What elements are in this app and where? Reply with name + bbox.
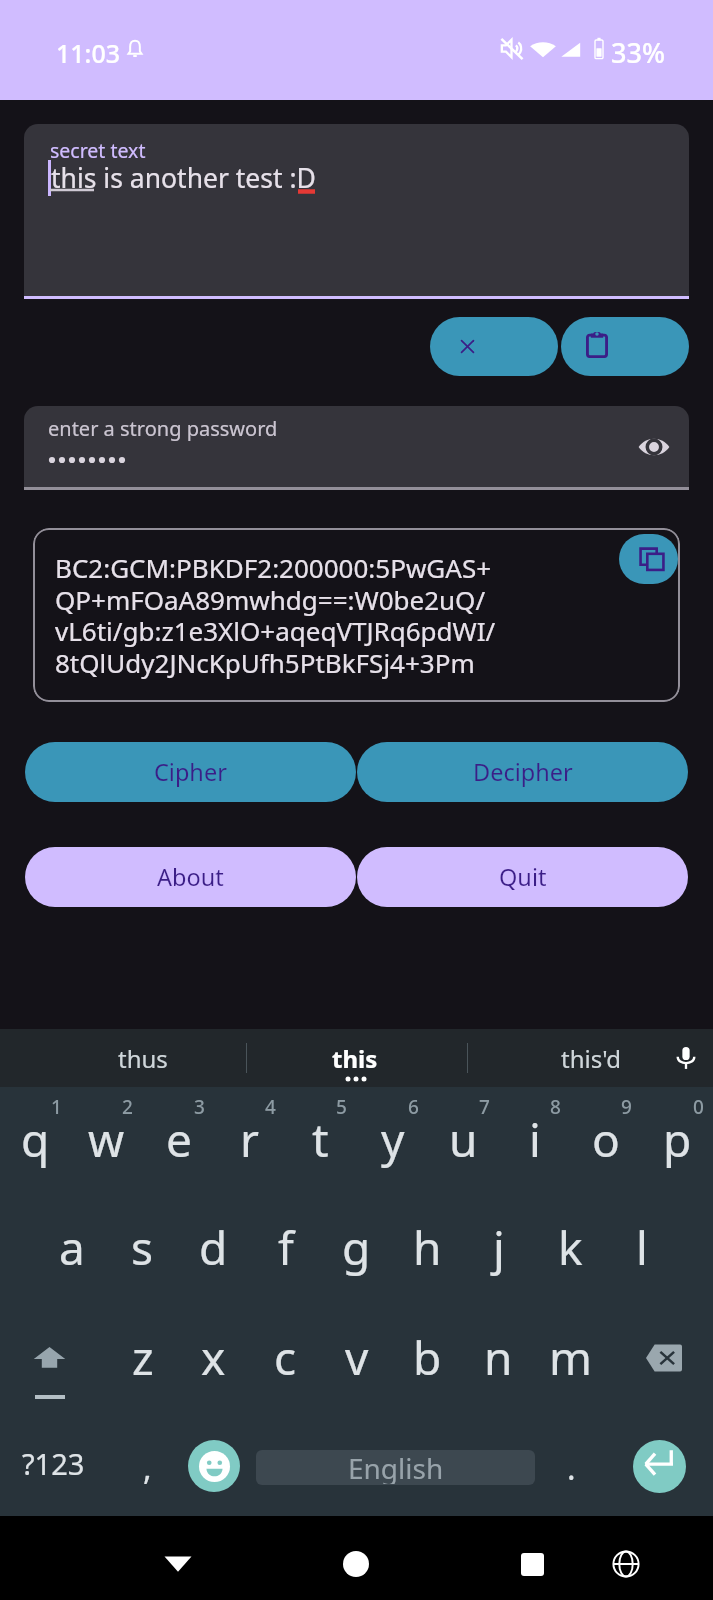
button[interactable]: . <box>541 1417 601 1517</box>
button[interactable]: k <box>535 1197 606 1297</box>
staticText: i <box>529 1108 541 1171</box>
staticText: ?123 <box>22 1444 85 1483</box>
button[interactable]: p <box>642 1089 713 1189</box>
button[interactable]: English <box>256 1450 535 1485</box>
staticText: 4 <box>265 1094 276 1120</box>
staticText: 0 <box>693 1094 704 1120</box>
staticText: Cipher <box>154 756 227 788</box>
button[interactable]: w <box>71 1089 142 1189</box>
button[interactable]: g <box>321 1197 392 1297</box>
staticText: k <box>558 1216 583 1279</box>
button[interactable]: f <box>250 1197 321 1297</box>
button[interactable]: r <box>214 1089 285 1189</box>
staticText: 7 <box>479 1094 490 1120</box>
button[interactable]: Recents <box>521 1553 544 1576</box>
staticText: . <box>567 1446 576 1490</box>
staticText: thus <box>118 1042 168 1075</box>
button[interactable]: q <box>0 1089 71 1189</box>
staticText: p <box>663 1108 692 1171</box>
button[interactable]: n <box>463 1307 534 1407</box>
button[interactable]: s <box>107 1197 178 1297</box>
staticText: Quit <box>499 861 547 893</box>
staticText: c <box>274 1326 297 1389</box>
button[interactable]: j <box>463 1197 534 1297</box>
button[interactable]: Back <box>163 1552 193 1574</box>
staticText: 6 <box>408 1094 419 1120</box>
button[interactable]: Quit <box>357 847 688 907</box>
staticText: l <box>636 1216 648 1279</box>
button[interactable]: About <box>25 847 356 907</box>
button[interactable]: secret text <box>24 124 689 296</box>
button[interactable]: ?123 <box>0 1417 112 1517</box>
staticText: this is another test :D <box>51 160 316 196</box>
staticText: 8tQlUdy2JNcKpUfh5PtBkFSj4+3Pm <box>55 645 475 680</box>
button[interactable]: x <box>178 1307 249 1407</box>
staticText: , <box>143 1446 152 1490</box>
button[interactable]: z <box>107 1307 178 1407</box>
button[interactable]: enter a strong password <box>24 406 689 487</box>
button[interactable]: Shift <box>0 1302 100 1412</box>
staticText: d <box>199 1216 228 1279</box>
button[interactable]: e <box>143 1089 214 1189</box>
staticText: 33% <box>611 34 665 71</box>
staticText: BC2:GCM:PBKDF2:200000:5PwGAS+ <box>55 550 492 585</box>
staticText: e <box>166 1108 192 1171</box>
staticText: q <box>21 1108 50 1171</box>
staticText: 2 <box>122 1094 133 1120</box>
button[interactable]: a <box>36 1197 107 1297</box>
button[interactable]: v <box>321 1307 392 1407</box>
staticText: 8 <box>550 1094 561 1120</box>
staticText: English <box>348 1450 444 1484</box>
button[interactable]: c <box>250 1307 321 1407</box>
button[interactable]: Copy <box>619 534 678 584</box>
button[interactable]: b <box>392 1307 463 1407</box>
button[interactable]: Show password <box>638 436 670 458</box>
staticText: u <box>449 1108 478 1171</box>
button[interactable]: l <box>606 1197 677 1297</box>
staticText: Decipher <box>473 756 573 788</box>
button[interactable]: i <box>499 1089 570 1189</box>
staticText: s <box>131 1216 154 1279</box>
button[interactable]: d <box>178 1197 249 1297</box>
button[interactable]: Paste <box>561 317 689 376</box>
button[interactable]: Language <box>612 1550 640 1578</box>
staticText: vL6ti/gb:z1e3XlO+aqeqVTJRq6pdWI/ <box>55 613 496 648</box>
button[interactable]: u <box>428 1089 499 1189</box>
staticText: x <box>201 1326 226 1389</box>
staticText: f <box>278 1216 294 1279</box>
button[interactable]: Enter <box>633 1440 686 1493</box>
button[interactable]: Home <box>343 1551 369 1577</box>
staticText: z <box>132 1326 154 1389</box>
staticText: y <box>381 1108 405 1171</box>
staticText: n <box>484 1326 513 1389</box>
staticText: g <box>342 1216 371 1279</box>
staticText: 11:03 <box>56 36 121 70</box>
staticText: 9 <box>621 1094 632 1120</box>
staticText: 1 <box>51 1094 62 1120</box>
button[interactable]: o <box>570 1089 641 1189</box>
staticText: QP+mFOaA89mwhdg==:W0be2uQ/ <box>55 582 486 617</box>
staticText: j <box>493 1216 505 1279</box>
button[interactable]: y <box>357 1089 428 1189</box>
staticText: r <box>240 1108 259 1171</box>
staticText: o <box>592 1108 620 1171</box>
button[interactable]: h <box>392 1197 463 1297</box>
staticText: enter a strong password <box>48 415 278 442</box>
button[interactable]: Emoji <box>188 1440 240 1492</box>
button[interactable]: BC2:GCM:PBKDF2:200000:5PwGAS+ <box>33 528 680 702</box>
button[interactable]: m <box>535 1307 606 1407</box>
button[interactable]: Cipher <box>25 742 356 802</box>
staticText: 5 <box>336 1094 347 1120</box>
button[interactable]: Voice input <box>673 1045 699 1071</box>
button[interactable]: Backspace <box>613 1302 713 1412</box>
staticText: b <box>413 1326 442 1389</box>
staticText: a <box>59 1216 85 1279</box>
button[interactable]: Clear <box>430 317 558 376</box>
button[interactable]: t <box>285 1089 356 1189</box>
button[interactable]: Decipher <box>357 742 688 802</box>
staticText: this <box>332 1042 378 1075</box>
staticText: secret text <box>50 137 146 164</box>
button[interactable]: , <box>112 1417 180 1517</box>
staticText: About <box>157 861 224 893</box>
staticText: m <box>549 1326 593 1389</box>
